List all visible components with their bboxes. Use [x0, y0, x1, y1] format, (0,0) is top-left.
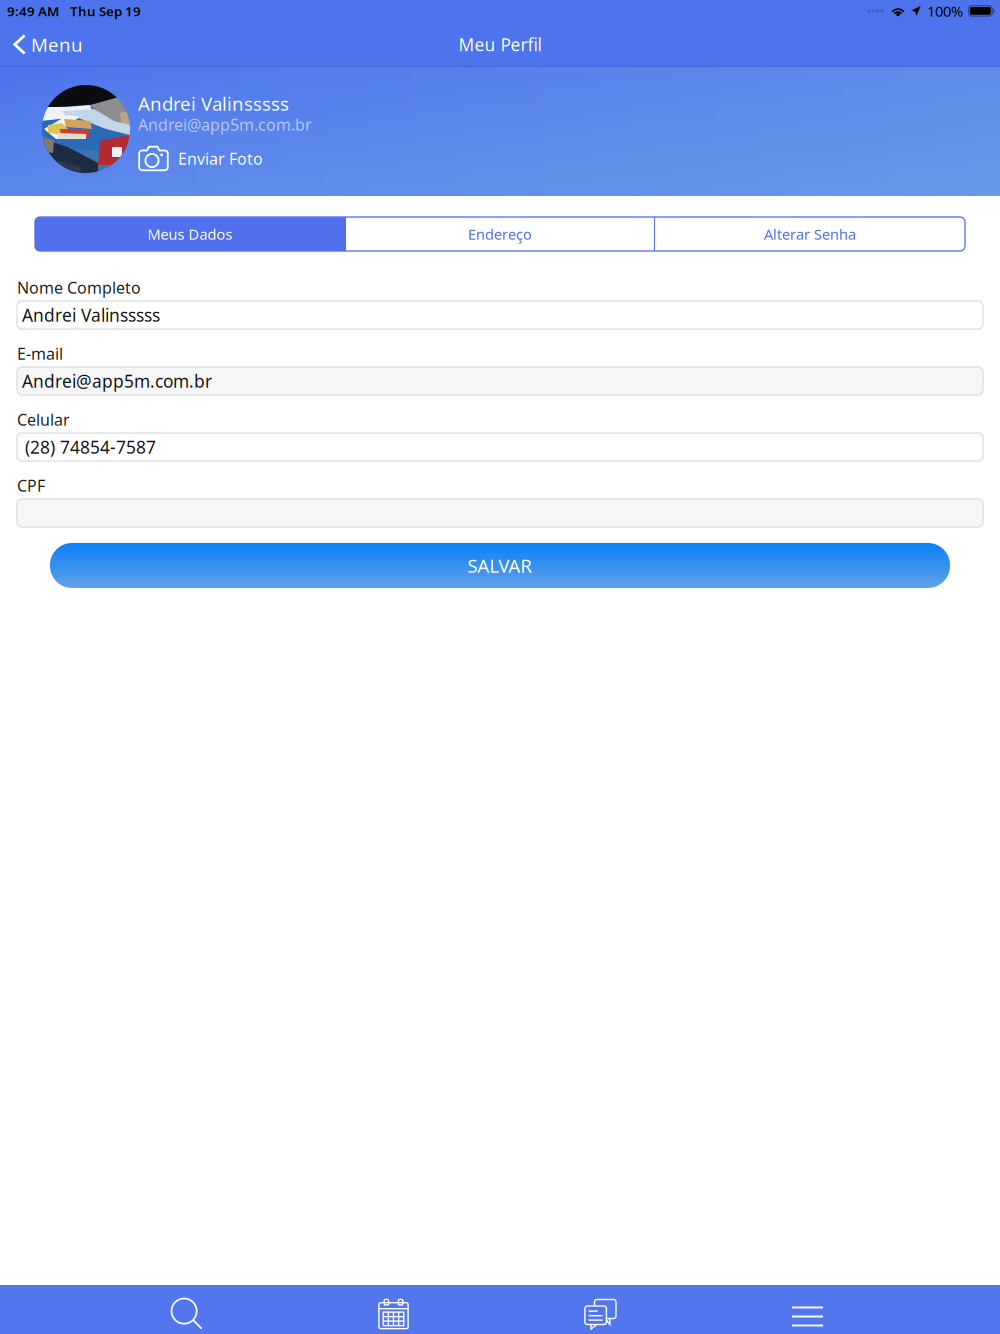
staticText: E-mail [17, 343, 63, 364]
staticText: Nome Completo [17, 277, 141, 298]
staticText: Enviar Foto [178, 148, 263, 169]
staticText: SALVAR [467, 553, 532, 578]
staticText: Alterar Senha [764, 224, 856, 244]
button[interactable]: Menu [704, 1285, 911, 1334]
staticText: Andrei Valinsssss [22, 303, 160, 326]
staticText: (28) 74854-7587 [25, 435, 156, 458]
button[interactable]: Buscar [83, 1285, 290, 1334]
staticText: Celular [17, 409, 70, 430]
staticText: CPF [17, 475, 45, 496]
staticText: 100% [927, 1, 963, 21]
button[interactable]: Meus Dados [35, 217, 345, 251]
button[interactable]: SALVAR [50, 543, 950, 588]
staticText: Meu Perfil [458, 33, 541, 56]
staticText: Endereço [468, 224, 532, 244]
button[interactable]: Alterar Senha [655, 217, 965, 251]
button[interactable]: Endereço [346, 217, 654, 251]
staticText: Meus Dados [147, 224, 232, 244]
staticText: Andrei Valinsssss [138, 91, 289, 116]
staticText: Andrei@app5m.com.br [22, 369, 212, 392]
staticText: Andrei@app5m.com.br [138, 114, 312, 135]
button[interactable]: Agenda [290, 1285, 497, 1334]
button[interactable]: Menu [0, 22, 93, 67]
staticText: Thu Sep 19 [70, 2, 141, 20]
staticText: Menu [31, 32, 83, 57]
button[interactable]: Mensagens [497, 1285, 704, 1334]
staticText: 9:49 AM [7, 2, 59, 20]
button[interactable]: Enviar Foto [138, 145, 263, 172]
